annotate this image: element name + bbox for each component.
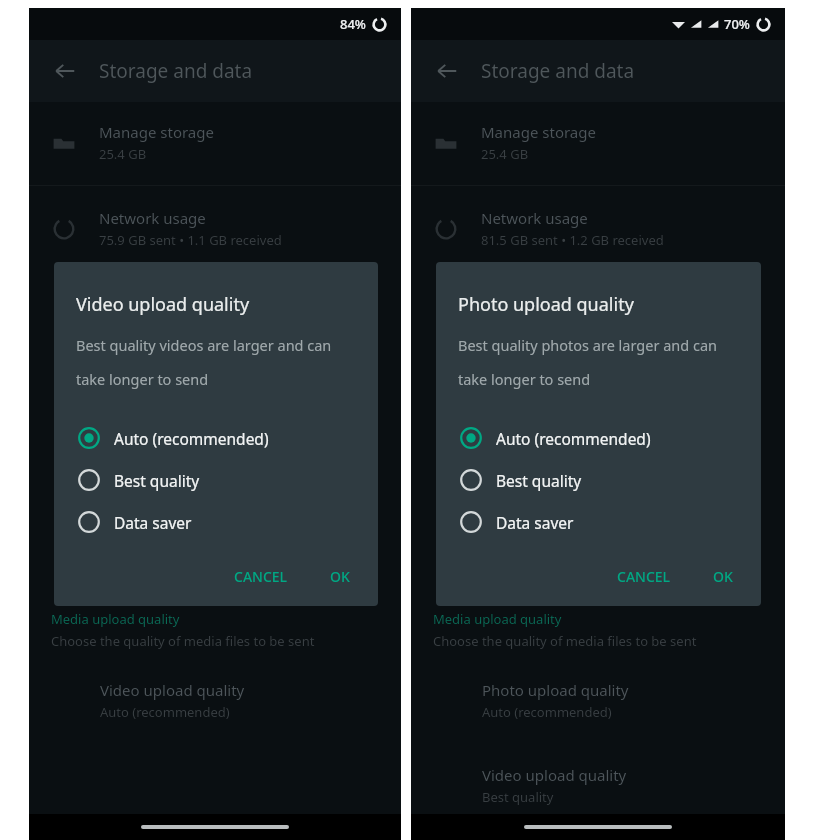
- staticText: Video upload quality: [100, 680, 245, 700]
- button[interactable]: Auto (recommended): [54, 417, 378, 459]
- staticText: CANCEL: [617, 567, 671, 586]
- staticText: Auto (recommended): [100, 703, 230, 721]
- staticText: Data saver: [114, 512, 192, 533]
- staticText: Video upload quality: [76, 292, 250, 317]
- staticText: take longer to send: [76, 369, 209, 389]
- button[interactable]: CANCEL: [224, 559, 298, 594]
- staticText: Best quality videos are larger and can: [76, 335, 332, 355]
- staticText: Network usage: [99, 208, 206, 228]
- staticText: take longer to send: [458, 369, 591, 389]
- button[interactable]: Video upload quality: [29, 672, 401, 729]
- staticText: Media upload quality: [433, 610, 562, 628]
- button[interactable]: Best quality: [436, 459, 761, 501]
- staticText: Network usage: [481, 208, 588, 228]
- staticText: 25.4 GB: [481, 145, 529, 163]
- staticText: Auto (recommended): [496, 428, 651, 449]
- staticText: Manage storage: [99, 122, 214, 142]
- staticText: Choose the quality of media files to be …: [51, 632, 315, 650]
- staticText: 84%: [340, 15, 366, 33]
- button[interactable]: Data saver: [54, 501, 378, 543]
- staticText: OK: [330, 567, 350, 586]
- button[interactable]: OK: [703, 559, 743, 594]
- button[interactable]: Manage storage: [411, 112, 785, 173]
- button[interactable]: Auto (recommended): [436, 417, 761, 459]
- staticText: OK: [713, 567, 733, 586]
- staticText: Best quality: [114, 470, 200, 491]
- button[interactable]: Best quality: [54, 459, 378, 501]
- staticText: 75.9 GB sent • 1.1 GB received: [99, 231, 282, 249]
- staticText: Storage and data: [481, 58, 635, 84]
- staticText: Photo upload quality: [458, 292, 634, 317]
- button[interactable]: Network usage: [29, 198, 401, 259]
- staticText: Manage storage: [481, 122, 596, 142]
- button[interactable]: Network usage: [411, 198, 785, 259]
- staticText: CANCEL: [234, 567, 288, 586]
- staticText: Data saver: [496, 512, 574, 533]
- button[interactable]: Back: [45, 51, 85, 91]
- staticText: Best quality: [482, 788, 554, 806]
- button[interactable]: Video upload quality: [411, 757, 785, 814]
- staticText: Best quality: [496, 470, 582, 491]
- staticText: Auto (recommended): [482, 703, 612, 721]
- button[interactable]: Manage storage: [29, 112, 401, 173]
- button[interactable]: Back: [427, 51, 467, 91]
- staticText: Choose the quality of media files to be …: [433, 632, 697, 650]
- staticText: 81.5 GB sent • 1.2 GB received: [481, 231, 664, 249]
- staticText: Photo upload quality: [482, 680, 629, 700]
- staticText: Video upload quality: [482, 765, 627, 785]
- button[interactable]: Data saver: [436, 501, 761, 543]
- button[interactable]: CANCEL: [607, 559, 681, 594]
- staticText: 25.4 GB: [99, 145, 147, 163]
- staticText: Auto (recommended): [114, 428, 269, 449]
- staticText: Best quality photos are larger and can: [458, 335, 718, 355]
- staticText: 70%: [724, 15, 750, 33]
- staticText: Storage and data: [99, 58, 253, 84]
- staticText: Media upload quality: [51, 610, 180, 628]
- button[interactable]: OK: [320, 559, 360, 594]
- button[interactable]: Photo upload quality: [411, 672, 785, 729]
